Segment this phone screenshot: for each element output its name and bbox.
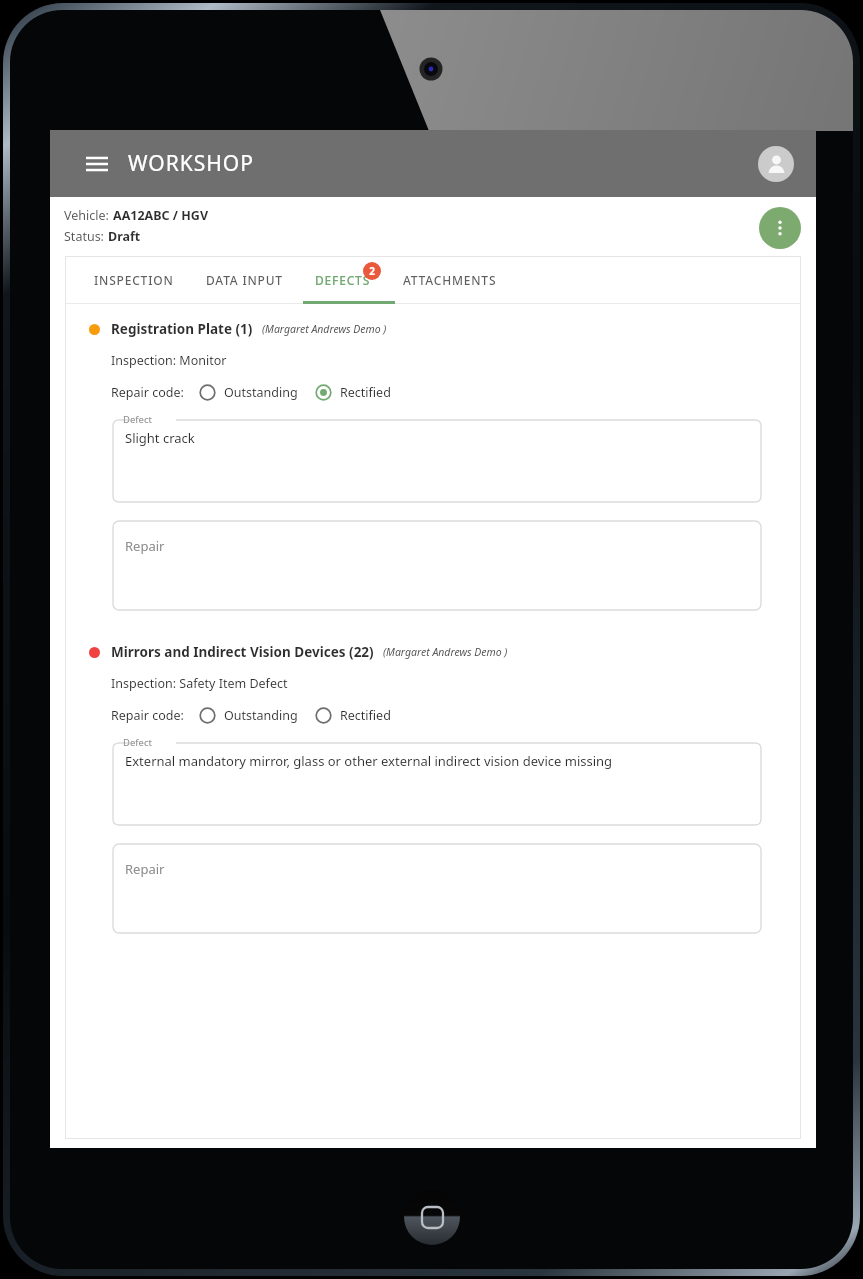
staticText: Repair: [125, 860, 760, 878]
staticText: DATA INPUT: [206, 272, 283, 288]
button[interactable]: Defect: [113, 413, 761, 502]
staticText: Defect: [123, 736, 152, 749]
staticText: Vehicle:: [64, 207, 113, 224]
staticText: Registration Plate (1): [111, 320, 253, 338]
button[interactable]: DEFECTS: [299, 256, 387, 304]
button[interactable]: Outstanding: [199, 707, 298, 724]
button[interactable]: INSPECTION: [78, 256, 190, 304]
button[interactable]: Menu: [82, 149, 112, 179]
staticText: External mandatory mirror, glass or othe…: [125, 752, 760, 770]
staticText: Outstanding: [224, 384, 298, 401]
button[interactable]: Defect: [113, 736, 761, 825]
button[interactable]: Rectified: [315, 707, 391, 724]
staticText: Inspection: Safety Item Defect: [111, 675, 288, 692]
staticText: (Margaret Andrews Demo ): [383, 645, 508, 659]
staticText: Outstanding: [224, 707, 298, 724]
button[interactable]: Rectified: [315, 384, 391, 401]
button[interactable]: Account: [758, 146, 794, 182]
staticText: Repair: [125, 537, 760, 555]
staticText: Inspection: Monitor: [111, 352, 227, 369]
button[interactable]: ATTACHMENTS: [387, 256, 513, 304]
staticText: Slight crack: [125, 429, 760, 447]
staticText: (Margaret Andrews Demo ): [262, 322, 387, 336]
button[interactable]: DATA INPUT: [190, 256, 299, 304]
button[interactable]: Repair: [113, 521, 761, 610]
button[interactable]: Outstanding: [199, 384, 298, 401]
staticText: Rectified: [340, 384, 391, 401]
button[interactable]: Home: [404, 1189, 460, 1245]
staticText: WORKSHOP: [128, 149, 254, 178]
staticText: Defect: [123, 413, 152, 426]
staticText: Status:: [64, 228, 108, 245]
staticText: AA12ABC / HGV: [113, 207, 209, 224]
button[interactable]: More options: [759, 207, 801, 249]
staticText: Draft: [108, 228, 141, 245]
staticText: DEFECTS: [315, 272, 371, 288]
staticText: 2: [369, 264, 375, 278]
staticText: Mirrors and Indirect Vision Devices (22): [111, 643, 374, 661]
staticText: Repair code:: [111, 384, 184, 401]
staticText: Repair code:: [111, 707, 184, 724]
staticText: INSPECTION: [94, 272, 174, 288]
button[interactable]: Repair: [113, 844, 761, 933]
staticText: ATTACHMENTS: [403, 272, 497, 288]
staticText: Rectified: [340, 707, 391, 724]
